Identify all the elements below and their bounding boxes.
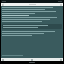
button[interactable] <box>3 25 61 28</box>
button[interactable]: Home <box>1 58 63 61</box>
button[interactable]: Back <box>2 4 4 6</box>
button[interactable]: Back <box>1 3 63 6</box>
